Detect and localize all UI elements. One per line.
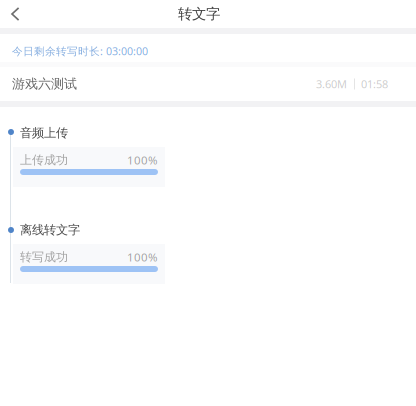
staticText: 转写成功 bbox=[20, 249, 68, 264]
button[interactable]: Back bbox=[0, 0, 42, 28]
staticText: 100% bbox=[127, 152, 158, 168]
staticText: 01:58 bbox=[361, 77, 388, 91]
staticText: 音频上传 bbox=[20, 125, 68, 141]
staticText: 游戏六测试 bbox=[12, 76, 77, 92]
staticText: 离线转文字 bbox=[20, 222, 80, 238]
staticText: 转文字 bbox=[178, 5, 220, 23]
staticText: 100% bbox=[127, 249, 158, 265]
staticText: 3.60M bbox=[316, 77, 347, 91]
staticText: 今日剩余转写时长: 03:00:00 bbox=[12, 44, 148, 58]
staticText: 上传成功 bbox=[20, 152, 68, 167]
